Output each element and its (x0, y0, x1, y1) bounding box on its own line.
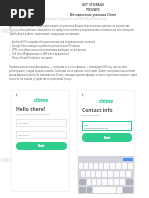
button[interactable] (123, 158, 133, 161)
button[interactable]: Next (82, 133, 132, 142)
button[interactable] (81, 171, 85, 177)
staticText: Storage https://t.me/GetHackStorage (44, 16, 108, 21)
staticText: Методические указания Chime (46, 13, 140, 17)
staticText: – (9, 48, 12, 51)
staticText: Next (38, 144, 45, 148)
staticText: Google Voice аккаунт в рабочем регионе и… (12, 44, 81, 47)
staticText: Last name (18, 134, 29, 137)
button[interactable] (89, 163, 93, 169)
button[interactable] (99, 163, 103, 169)
staticText: Contact info (82, 107, 113, 114)
staticText: chime (99, 98, 113, 104)
button[interactable]: First name (16, 119, 67, 127)
staticText: e/GetHackStorage (14, 148, 55, 154)
button[interactable]: PDF document (0, 0, 45, 26)
staticText: Let's start with some basic info. (16, 113, 50, 116)
staticText: Hello there! (16, 106, 46, 113)
staticText: Первым делом покупаем фирму — смотрим чт… (9, 65, 141, 81)
staticText: PRIVATE PRIVATE (1, 157, 43, 163)
staticText: someone@gmail.com (84, 126, 109, 129)
other: Back (15, 93, 19, 97)
staticText: PRIVATE (46, 7, 140, 12)
staticText: Android/iOS смартфон (актуальная версия … (12, 40, 96, 43)
button[interactable] (87, 179, 91, 185)
staticText: First name (18, 122, 29, 125)
staticText: – (9, 52, 12, 55)
button[interactable] (97, 179, 101, 185)
button[interactable]: Back (81, 93, 85, 97)
staticText: PDF (10, 5, 35, 21)
button[interactable] (91, 171, 95, 177)
other: Back (81, 93, 85, 97)
staticText: PRIVATE (1, 28, 20, 34)
button[interactable] (84, 163, 88, 169)
button[interactable]: Last name (16, 131, 67, 139)
button[interactable]: Email (82, 121, 132, 131)
staticText: chime (34, 97, 48, 103)
staticText: Next (104, 136, 111, 140)
staticText: – (9, 40, 12, 43)
button[interactable] (92, 179, 96, 185)
button[interactable]: Next (16, 142, 67, 150)
staticText: GET STORAGE (46, 2, 140, 7)
button[interactable]: Back (15, 93, 19, 97)
staticText: Email (84, 124, 89, 126)
staticText: – (9, 56, 12, 59)
staticText: Full Info (Информация о SSN и все докуме… (12, 52, 70, 55)
button[interactable] (86, 171, 90, 177)
staticText: Данное приложение служит для защиты и хр… (9, 24, 141, 36)
staticText: Enter your email (82, 114, 100, 117)
button[interactable] (79, 163, 83, 169)
staticText: – (9, 44, 12, 47)
button[interactable] (94, 163, 98, 169)
staticText: VPN со стабильным и качественным выбором… (12, 48, 86, 51)
staticText: Device Detail/Hotmail и так далее (12, 56, 53, 59)
